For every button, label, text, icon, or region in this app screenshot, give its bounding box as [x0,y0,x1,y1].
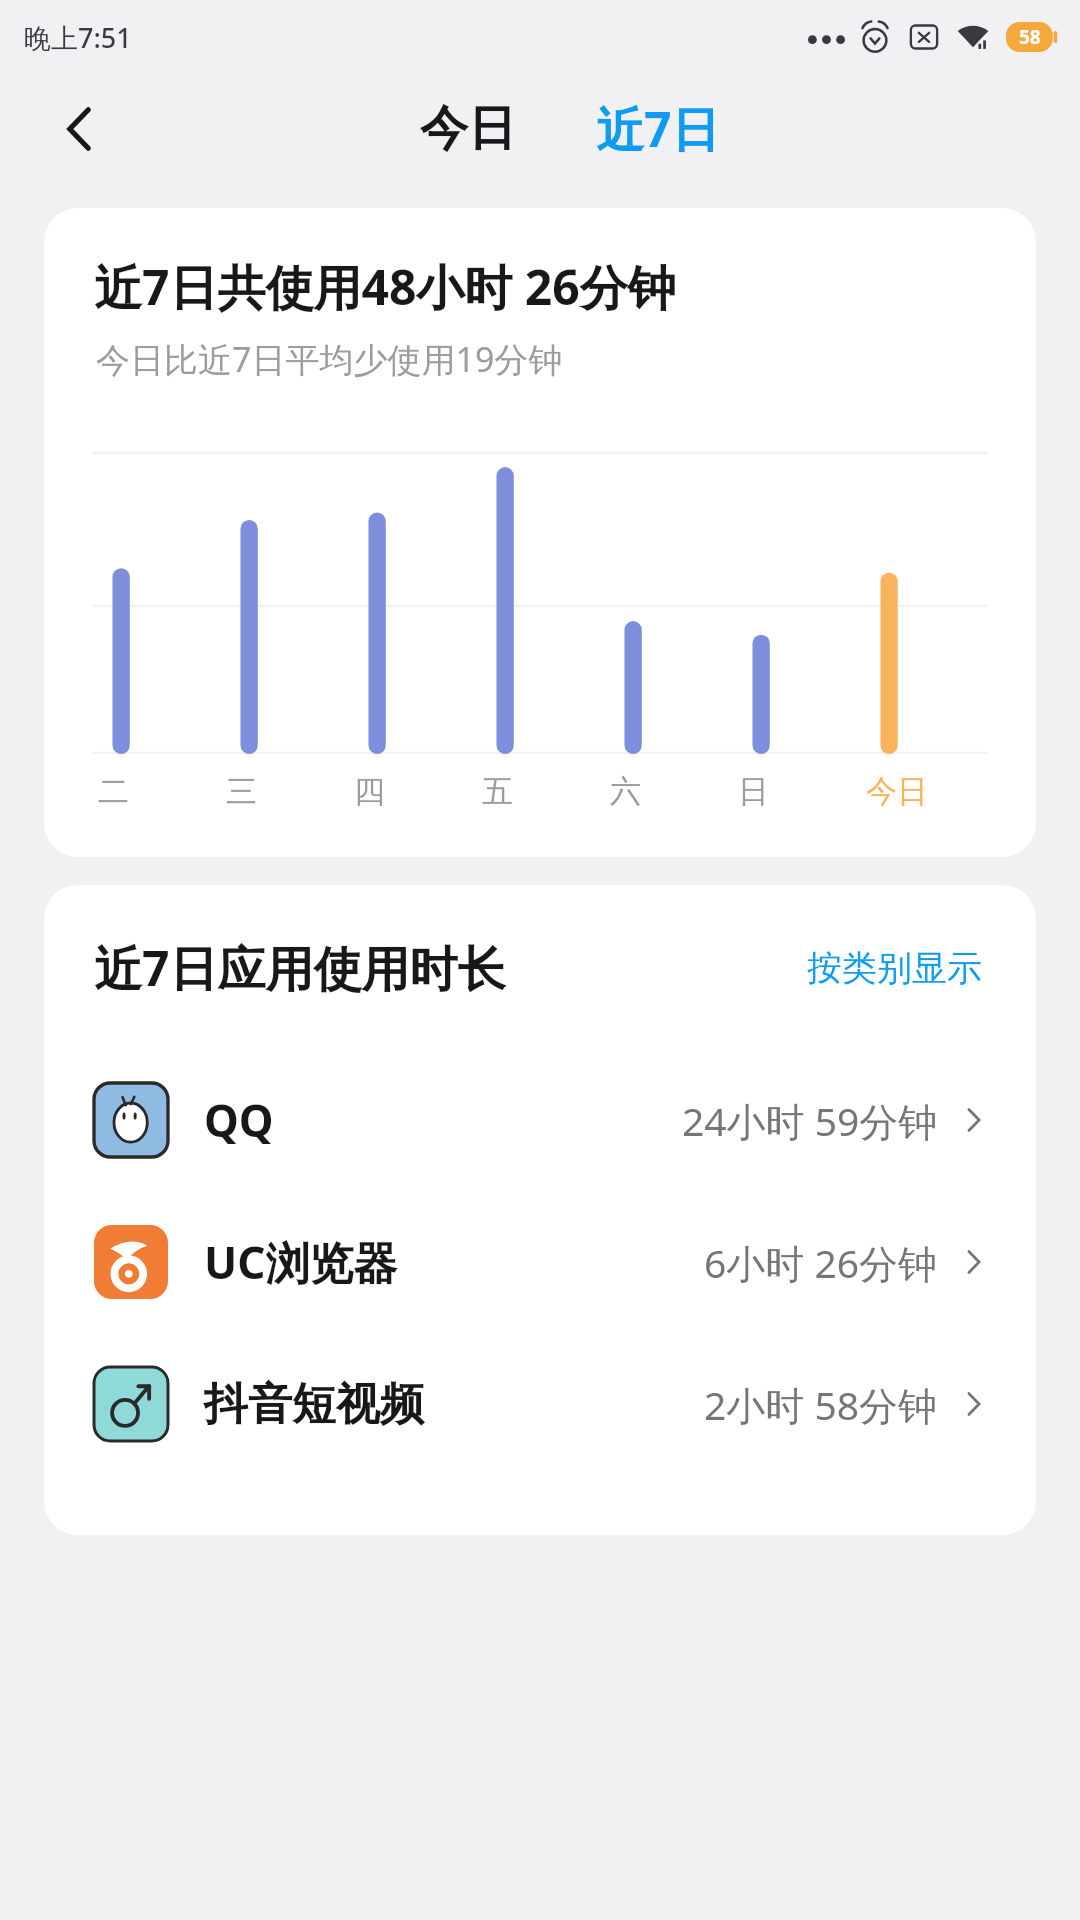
button[interactable]: UC浏览器 [44,1191,1036,1333]
staticText: 今日 [866,772,928,811]
staticText: 今日比近7日平均少使用19分钟 [96,336,563,382]
staticText: 58 [1019,24,1041,50]
button[interactable]: Back [48,97,112,161]
button[interactable]: 近7日 [580,88,736,170]
staticText: 今日 [420,99,516,159]
staticText: 6小时 26分钟 [704,1236,938,1289]
staticText: 24小时 59分钟 [682,1094,938,1147]
staticText: 四 [354,772,385,811]
button[interactable]: 近7日共使用48小时 26分钟 [44,208,1036,857]
staticText: 六 [610,772,641,811]
button[interactable]: 今日 [404,91,532,167]
staticText: QQ [204,1090,274,1150]
staticText: 近7日 [596,96,720,162]
staticText: 2小时 58分钟 [704,1378,938,1431]
button[interactable]: 抖音短视频 [44,1333,1036,1475]
staticText: 三 [226,772,257,811]
staticText: 抖音短视频 [204,1377,424,1432]
staticText: 日 [738,772,769,811]
staticText: 近7日应用使用时长 [94,935,506,1001]
staticText: 晚上7:51 [24,19,132,56]
staticText: 近7日共使用48小时 26分钟 [94,254,676,320]
staticText: 按类别显示 [807,946,982,990]
staticText: UC浏览器 [204,1232,398,1292]
staticText: 二 [98,772,129,811]
button[interactable]: QQ [44,1049,1036,1191]
button[interactable]: 按类别显示 [801,940,988,996]
staticText: 五 [482,772,513,811]
